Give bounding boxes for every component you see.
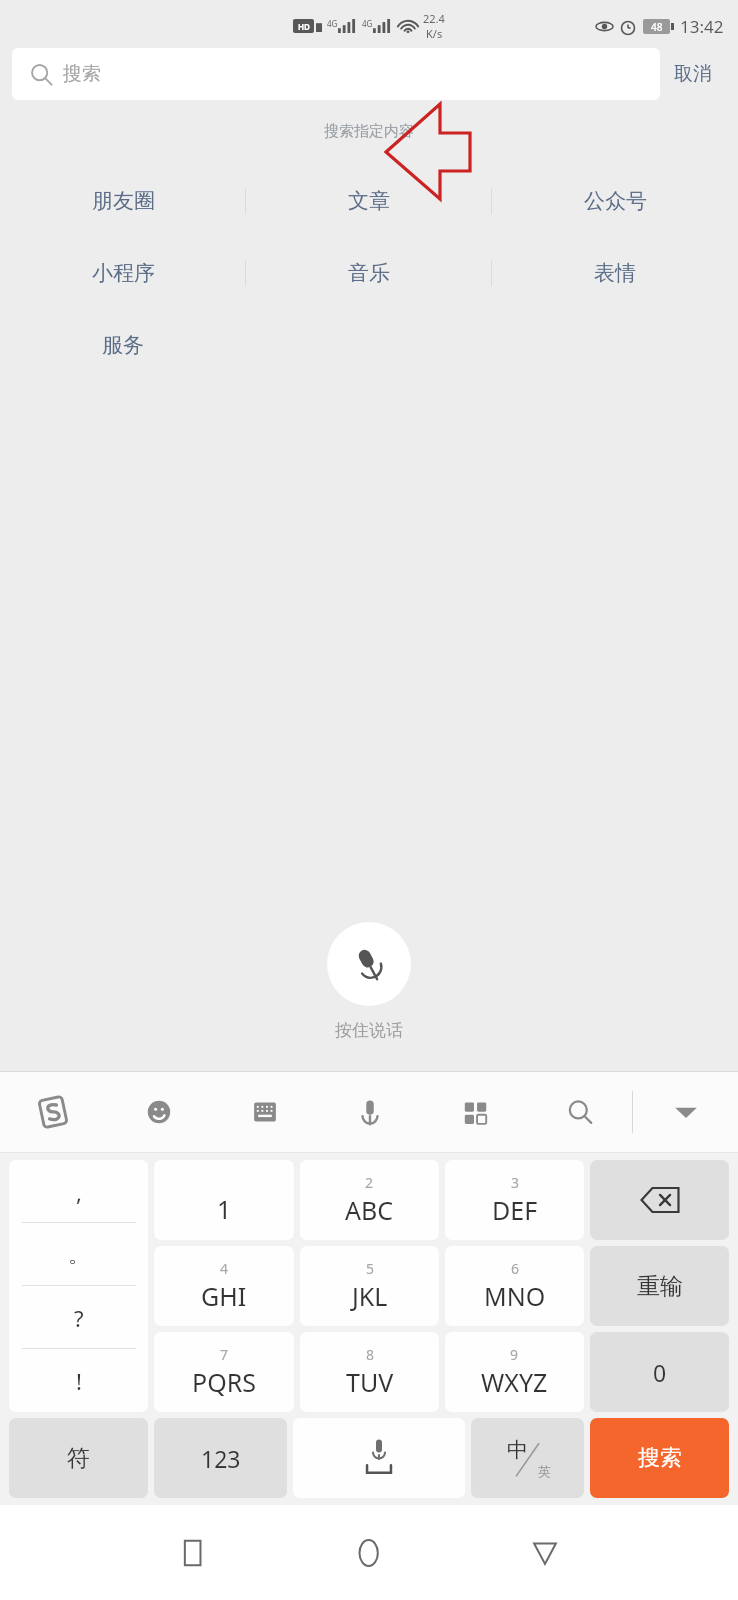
staticText: ! xyxy=(76,1366,82,1396)
button[interactable]: Emoji xyxy=(106,1072,212,1152)
staticText: 7 xyxy=(220,1345,229,1364)
button[interactable]: 取消 xyxy=(660,52,726,96)
button[interactable]: Sogou xyxy=(0,1072,106,1152)
button[interactable]: 3 xyxy=(445,1160,584,1240)
staticText: 取消 xyxy=(674,62,712,86)
staticText: 搜索 xyxy=(638,1444,682,1472)
staticText: 公众号 xyxy=(584,188,647,214)
button[interactable]: Backspace xyxy=(590,1160,729,1240)
button[interactable]: 重输 xyxy=(590,1246,729,1326)
staticText: , xyxy=(76,1177,82,1207)
staticText: 重输 xyxy=(637,1272,683,1301)
button[interactable]: 服务 xyxy=(0,321,246,369)
button[interactable]: 搜索 xyxy=(12,48,660,100)
button[interactable]: 搜索 xyxy=(590,1418,729,1498)
button[interactable]: 8 xyxy=(300,1332,439,1412)
staticText: K/s xyxy=(426,26,443,41)
button[interactable]: 朋友圈 xyxy=(0,177,246,225)
staticText: 3 xyxy=(511,1173,520,1192)
staticText: 4G xyxy=(327,18,338,29)
staticText: 文章 xyxy=(348,188,390,214)
staticText: WXYZ xyxy=(481,1365,548,1399)
button[interactable]: 公众号 xyxy=(492,177,738,225)
button[interactable]: 123 xyxy=(154,1418,287,1498)
button[interactable]: Back xyxy=(457,1505,633,1600)
staticText: 中 xyxy=(507,1437,528,1463)
button[interactable]: 2 xyxy=(300,1160,439,1240)
button[interactable]: 1 xyxy=(154,1160,294,1240)
button[interactable]: 6 xyxy=(445,1246,584,1326)
staticText: 9 xyxy=(510,1345,519,1364)
staticText: 服务 xyxy=(102,332,144,358)
button[interactable]: Keyboard xyxy=(212,1072,317,1152)
button[interactable]: 按住说话 xyxy=(327,922,411,1006)
staticText: HD xyxy=(298,21,310,32)
staticText: 英 xyxy=(538,1463,551,1479)
button[interactable]: 9 xyxy=(445,1332,584,1412)
staticText: MNO xyxy=(484,1279,546,1313)
staticText: PQRS xyxy=(192,1365,256,1399)
button[interactable]: , xyxy=(9,1160,148,1412)
button[interactable]: 5 xyxy=(300,1246,439,1326)
button[interactable]: 表情 xyxy=(492,249,738,297)
button[interactable]: Hide keyboard xyxy=(633,1072,738,1152)
button[interactable]: 4 xyxy=(154,1246,294,1326)
staticText: GHI xyxy=(201,1279,247,1313)
button[interactable]: 符 xyxy=(9,1418,148,1498)
staticText: 1 xyxy=(217,1192,232,1226)
staticText: 6 xyxy=(511,1259,520,1278)
staticText: 8 xyxy=(366,1345,375,1364)
staticText: 4G xyxy=(362,18,373,29)
staticText: 48 xyxy=(651,20,663,34)
button[interactable]: 音乐 xyxy=(246,249,492,297)
staticText: DEF xyxy=(492,1193,538,1227)
button[interactable]: Panel xyxy=(422,1072,527,1152)
staticText: 。 xyxy=(68,1241,90,1269)
staticText: 22.4 xyxy=(423,11,445,26)
button[interactable]: 0 xyxy=(590,1332,729,1412)
staticText: 123 xyxy=(201,1443,241,1474)
button[interactable]: Search xyxy=(527,1072,632,1152)
staticText: 小程序 xyxy=(92,260,155,286)
staticText: JKL xyxy=(352,1279,388,1313)
staticText: 朋友圈 xyxy=(92,188,155,214)
staticText: 按住说话 xyxy=(335,1020,403,1041)
staticText: 符 xyxy=(67,1444,90,1473)
staticText: 搜索 xyxy=(63,62,101,86)
staticText: ABC xyxy=(345,1193,394,1227)
button[interactable]: Recents xyxy=(105,1505,281,1600)
staticText: 4 xyxy=(220,1259,229,1278)
button[interactable]: 中英切换 xyxy=(471,1418,584,1498)
staticText: TUV xyxy=(346,1365,394,1399)
button[interactable]: Space / voice xyxy=(293,1418,465,1498)
button[interactable]: 7 xyxy=(154,1332,294,1412)
staticText: 表情 xyxy=(594,260,636,286)
staticText: 13:42 xyxy=(680,15,724,38)
staticText: 搜索指定内容 xyxy=(0,122,738,141)
staticText: 0 xyxy=(653,1357,667,1388)
staticText: ? xyxy=(74,1303,84,1333)
staticText: 2 xyxy=(365,1173,374,1192)
button[interactable]: 文章 xyxy=(246,177,492,225)
button[interactable]: Voice input xyxy=(317,1072,422,1152)
staticText: 音乐 xyxy=(348,260,390,286)
button[interactable]: 小程序 xyxy=(0,249,246,297)
button[interactable]: Home xyxy=(281,1505,457,1600)
staticText: 5 xyxy=(366,1259,375,1278)
